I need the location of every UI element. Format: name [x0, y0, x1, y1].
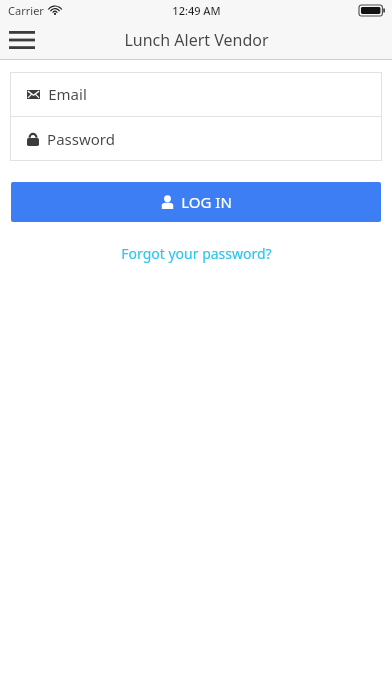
button[interactable]: Open navigation menu: [0, 20, 44, 60]
staticText: LOG IN: [181, 192, 232, 212]
staticText: 12:49 AM: [172, 3, 221, 18]
staticText: Email: [48, 84, 87, 104]
staticText: Forgot your password?: [121, 244, 272, 263]
staticText: Password: [47, 129, 115, 149]
staticText: Lunch Alert Vendor: [124, 29, 269, 51]
staticText: Carrier: [8, 3, 44, 18]
button[interactable]: Password: [10, 117, 382, 161]
button[interactable]: Email: [10, 72, 382, 116]
button[interactable]: LOG IN: [11, 182, 381, 222]
button[interactable]: Forgot your password?: [111, 240, 282, 267]
